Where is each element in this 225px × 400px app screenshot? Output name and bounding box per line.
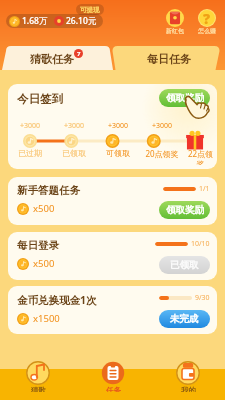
staticText: 可领取: [106, 148, 130, 158]
staticText: +3000: [152, 121, 173, 131]
staticText: 每日登录: [17, 239, 59, 252]
button[interactable]: 1.68万: [6, 14, 103, 28]
staticText: 10/10: [191, 239, 210, 249]
staticText: 1.68万: [22, 15, 48, 27]
staticText: 26.10元: [66, 15, 97, 27]
button[interactable]: 未完成: [159, 310, 210, 328]
button[interactable]: 每日任务: [112, 46, 225, 70]
staticText: x500: [33, 257, 55, 270]
staticText: 领取奖励: [166, 92, 204, 104]
button[interactable]: 可提现: [76, 4, 104, 15]
staticText: x1500: [33, 312, 60, 325]
button[interactable]: 猜歌: [26, 361, 50, 392]
staticText: 9/30: [195, 293, 210, 303]
button[interactable]: 我的: [176, 361, 200, 392]
staticText: 22点领奖: [184, 148, 217, 165]
button[interactable]: 猜歌任务: [0, 46, 112, 70]
staticText: 已领取: [62, 148, 86, 158]
staticText: 我的: [181, 386, 196, 392]
staticText: +3000: [64, 121, 85, 131]
staticText: 1/1: [199, 184, 210, 194]
button[interactable]: 怎么赚: [195, 9, 219, 35]
staticText: 新红包: [166, 27, 184, 35]
staticText: 猜歌任务: [30, 52, 74, 66]
staticText: 7: [77, 50, 81, 58]
staticText: 未完成: [170, 313, 199, 325]
staticText: x500: [33, 202, 55, 215]
staticText: +3000: [108, 121, 129, 131]
staticText: 任务: [106, 386, 121, 392]
staticText: +3000: [20, 121, 41, 131]
staticText: 已领取: [170, 259, 199, 271]
staticText: 已过期: [18, 148, 42, 158]
button[interactable]: 任务: [101, 361, 125, 392]
staticText: 怎么赚: [198, 27, 216, 35]
button[interactable]: 新红包: [163, 9, 187, 35]
staticText: 可提现: [80, 6, 100, 14]
button[interactable]: 已领取: [159, 256, 210, 274]
button[interactable]: 领取奖励: [159, 89, 210, 107]
staticText: 金币兑换现金1次: [17, 293, 97, 307]
button[interactable]: 领取奖励: [159, 201, 210, 219]
staticText: 新手答题任务: [17, 184, 80, 197]
staticText: 猜歌: [31, 386, 46, 392]
staticText: 今日签到: [17, 92, 63, 106]
staticText: 每日任务: [147, 52, 191, 66]
staticText: 20点领奖: [145, 148, 179, 159]
staticText: ?: [203, 9, 211, 27]
staticText: 领取奖励: [166, 204, 204, 216]
